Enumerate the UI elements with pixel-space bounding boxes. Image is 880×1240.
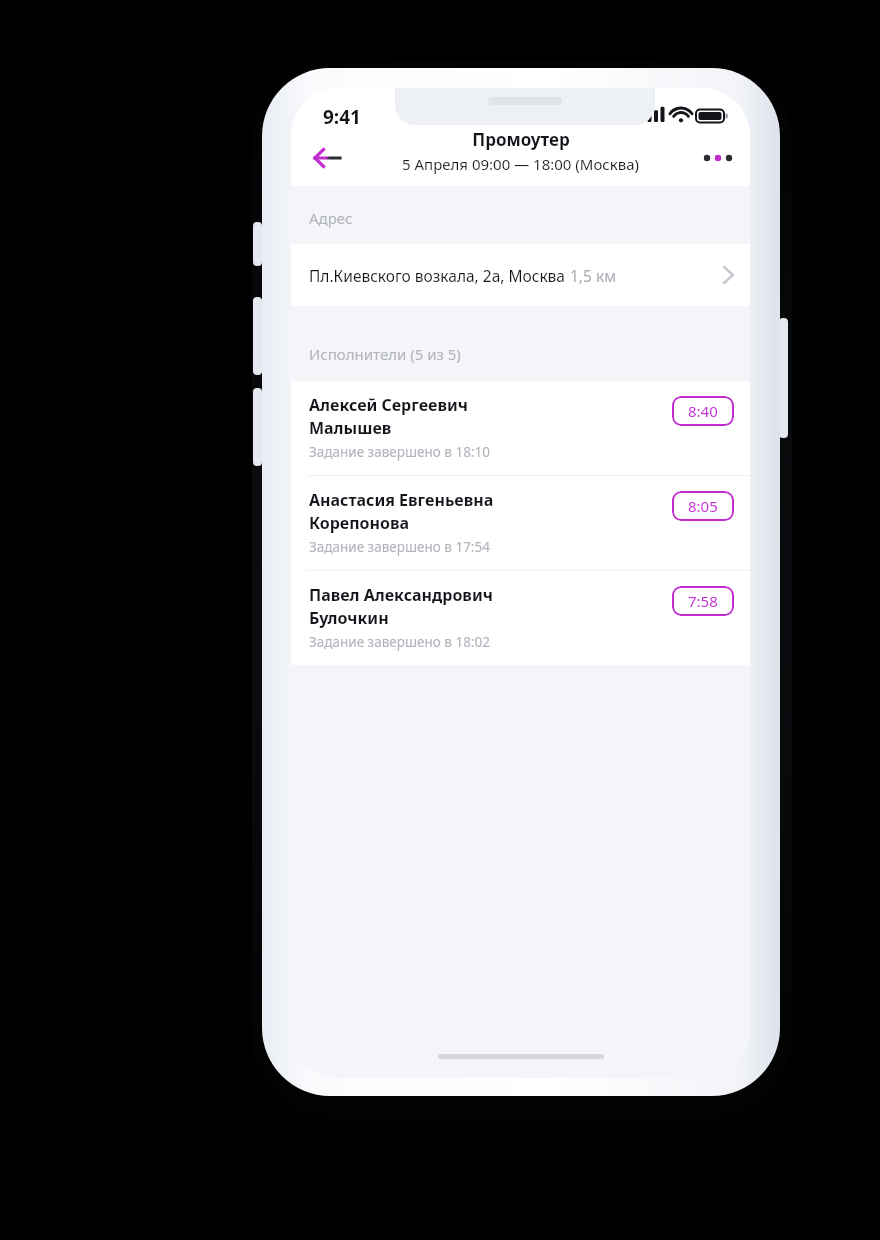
button[interactable]: Back	[303, 134, 351, 182]
staticText: 1,5 км	[570, 265, 617, 286]
staticText: Адрес	[309, 208, 353, 228]
button[interactable]: More options	[694, 134, 742, 182]
staticText: Промоутер	[472, 128, 570, 151]
button[interactable]: 7:58	[672, 586, 734, 616]
staticText: Булочкин	[309, 607, 389, 629]
button[interactable]: Анастасия Евгеньевна	[291, 476, 750, 570]
staticText: 8:40	[688, 401, 718, 421]
staticText: Малышев	[309, 417, 392, 439]
button[interactable]: Пл.Киевского возкала, 2а, Москва	[291, 244, 750, 306]
button[interactable]: 8:05	[672, 491, 734, 521]
staticText: 7:58	[688, 591, 718, 611]
staticText: 9:41	[323, 104, 361, 130]
button[interactable]: Алексей Сергеевич	[291, 381, 750, 475]
staticText: Анастасия Евгеньевна	[309, 489, 494, 511]
staticText: Задание завершено в 18:10	[309, 443, 490, 461]
button[interactable]: Павел Александрович	[291, 571, 750, 665]
staticText: Алексей Сергеевич	[309, 394, 468, 416]
staticText: Павел Александрович	[309, 584, 493, 606]
staticText: Корепонова	[309, 512, 410, 534]
staticText: 5 Апреля 09:00 — 18:00 (Москва)	[402, 154, 639, 174]
staticText: Пл.Киевского возкала, 2а, Москва	[309, 265, 565, 286]
button[interactable]: 8:40	[672, 396, 734, 426]
staticText: 8:05	[688, 496, 718, 516]
staticText: Задание завершено в 18:02	[309, 633, 490, 651]
staticText: Задание завершено в 17:54	[309, 538, 490, 556]
staticText: Исполнители (5 из 5)	[309, 344, 461, 364]
